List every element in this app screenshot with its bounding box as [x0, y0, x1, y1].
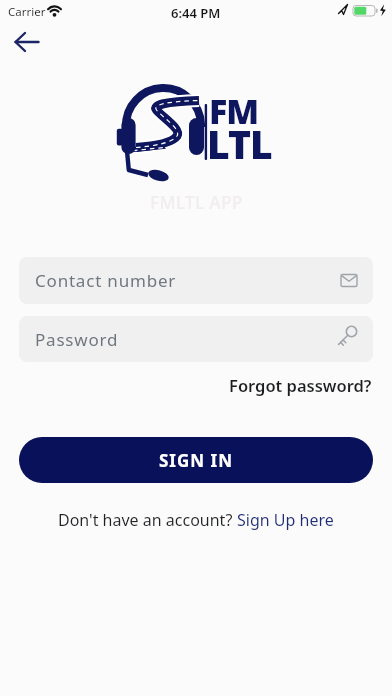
staticText: SIGN IN	[159, 449, 233, 472]
button[interactable]: Password	[19, 316, 373, 362]
staticText: Forgot password?	[229, 374, 372, 396]
button[interactable]: SIGN IN	[19, 437, 373, 483]
staticText: Sign Up here	[237, 509, 334, 531]
button[interactable]: Contact number	[19, 257, 373, 304]
button[interactable]	[8, 26, 46, 58]
staticText: FM	[209, 88, 259, 134]
staticText: FMLTL APP	[150, 190, 243, 214]
staticText: Contact number	[35, 269, 177, 292]
staticText: Don't have an account?	[58, 509, 237, 531]
staticText: 6:44 PM	[171, 4, 221, 22]
staticText: LTL	[207, 117, 272, 170]
button[interactable]: Sign Up here	[237, 509, 334, 531]
button[interactable]: Forgot password?	[229, 374, 372, 396]
staticText: Password	[35, 328, 119, 351]
staticText: Carrier	[8, 4, 46, 20]
